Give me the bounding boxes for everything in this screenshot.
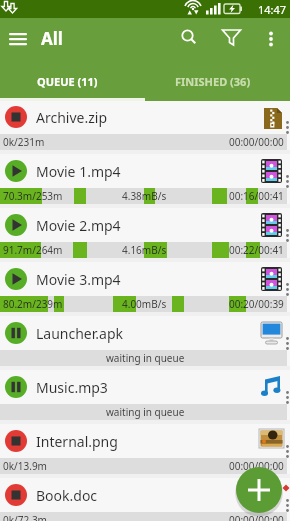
button[interactable] bbox=[5, 268, 27, 290]
staticText: 00:20/00:39 bbox=[229, 297, 284, 311]
staticText: 00:22/00:41 bbox=[229, 243, 284, 257]
button[interactable] bbox=[284, 336, 290, 352]
staticText: 00:16/00:41 bbox=[229, 189, 284, 203]
button[interactable] bbox=[284, 174, 290, 190]
button[interactable] bbox=[5, 214, 27, 236]
staticText: Movie 3.mp4 bbox=[36, 270, 121, 289]
staticText: 0k/231m bbox=[3, 135, 45, 149]
staticText: 0k/72.3m bbox=[3, 513, 47, 521]
button[interactable] bbox=[0, 424, 290, 474]
button[interactable] bbox=[284, 444, 290, 460]
button[interactable] bbox=[284, 282, 290, 298]
button[interactable] bbox=[284, 498, 290, 514]
staticText: 00:00/00:00 bbox=[229, 135, 284, 149]
staticText: FINISHED (36) bbox=[175, 74, 251, 89]
button[interactable] bbox=[0, 154, 290, 204]
button[interactable] bbox=[5, 160, 27, 182]
staticText: Movie 1.mp4 bbox=[36, 162, 121, 181]
staticText: Archive.zip bbox=[36, 108, 107, 127]
staticText: 00:00/00:00 bbox=[229, 459, 284, 473]
staticText: waiting in queue bbox=[106, 351, 185, 365]
button[interactable] bbox=[8, 28, 28, 48]
staticText: Launcher.apk bbox=[36, 324, 123, 343]
button[interactable]: FINISHED (36) bbox=[145, 57, 290, 101]
staticText: 0k/13.9m bbox=[3, 459, 47, 473]
button[interactable] bbox=[0, 478, 290, 521]
button[interactable] bbox=[0, 100, 290, 150]
staticText: Book.doc bbox=[36, 486, 98, 505]
staticText: 80.2m/239m bbox=[3, 297, 63, 311]
button[interactable] bbox=[284, 120, 290, 136]
staticText: 91.7m/264m bbox=[3, 243, 63, 257]
button[interactable] bbox=[5, 376, 27, 398]
staticText: Music.mp3 bbox=[36, 378, 108, 397]
staticText: Movie 2.mp4 bbox=[36, 216, 121, 235]
staticText: 70.3m/253m bbox=[3, 189, 63, 203]
staticText: 4.16mB/s bbox=[122, 243, 167, 257]
button[interactable] bbox=[0, 208, 290, 258]
button[interactable] bbox=[236, 467, 282, 513]
staticText: 14:47 bbox=[258, 2, 287, 17]
button[interactable] bbox=[262, 27, 280, 49]
staticText: waiting in queue bbox=[106, 405, 185, 419]
staticText: 4.00mB/s bbox=[122, 297, 167, 311]
button[interactable] bbox=[0, 370, 290, 420]
staticText: 4.38mB/s bbox=[122, 189, 167, 203]
button[interactable] bbox=[284, 228, 290, 244]
button[interactable] bbox=[179, 27, 199, 47]
button[interactable] bbox=[5, 484, 27, 506]
button[interactable] bbox=[5, 322, 27, 344]
staticText: 00:00/00:00 bbox=[229, 513, 284, 521]
staticText: All bbox=[41, 27, 63, 50]
button[interactable] bbox=[0, 316, 290, 366]
button[interactable] bbox=[5, 106, 27, 128]
button[interactable] bbox=[5, 430, 27, 452]
staticText: Internal.png bbox=[36, 432, 118, 451]
button[interactable]: QUEUE (11) bbox=[0, 57, 145, 101]
button[interactable] bbox=[284, 390, 290, 406]
button[interactable] bbox=[221, 27, 242, 48]
staticText: QUEUE (11) bbox=[37, 74, 98, 89]
button[interactable] bbox=[0, 262, 290, 312]
